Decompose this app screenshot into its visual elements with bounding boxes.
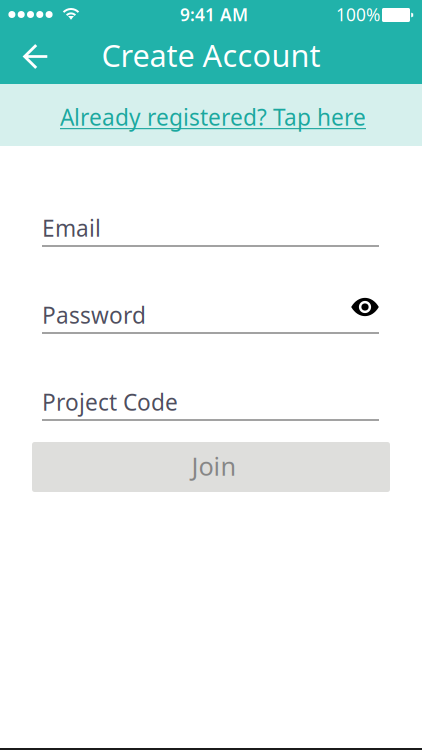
staticText: Project Code <box>42 387 178 417</box>
staticText: 100% <box>336 3 380 26</box>
button[interactable]: Already registered? Tap here <box>0 84 422 146</box>
button[interactable]: Password <box>42 300 379 334</box>
staticText: Already registered? Tap here <box>60 102 366 132</box>
button[interactable]: Project Code <box>42 387 379 421</box>
staticText: Join <box>191 449 236 483</box>
button[interactable]: Back <box>9 29 61 84</box>
button[interactable]: Join <box>32 442 390 492</box>
staticText: 9:41 AM <box>180 3 248 26</box>
staticText: Email <box>42 213 101 243</box>
staticText: Create Account <box>101 35 320 75</box>
staticText: Password <box>42 300 146 330</box>
button[interactable]: Email <box>42 213 379 247</box>
button[interactable]: Show password <box>345 290 385 324</box>
